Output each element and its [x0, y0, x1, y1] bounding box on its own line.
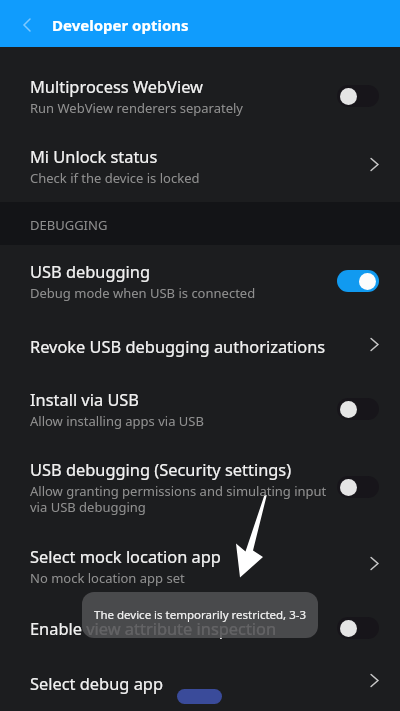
staticText: Run WebView renderers separately — [30, 99, 243, 117]
button[interactable]: Toggle — [337, 617, 379, 639]
button[interactable]: Enable view attribute inspection — [0, 600, 400, 656]
button[interactable]: Toggle — [337, 398, 379, 420]
button[interactable]: USB debugging — [0, 245, 400, 316]
button[interactable]: Install via USB — [0, 376, 400, 442]
button[interactable]: Mi Unlock status — [0, 130, 400, 202]
button[interactable]: Back — [0, 2, 52, 47]
staticText: Revoke USB debugging authorizations — [30, 335, 326, 357]
staticText: Check if the device is locked — [30, 169, 200, 187]
staticText: Developer options — [52, 15, 189, 35]
staticText: Debug mode when USB is connected — [30, 284, 256, 302]
button[interactable]: USB debugging (Security settings) — [0, 442, 400, 531]
staticText: No mock location app set — [30, 569, 185, 587]
staticText: USB debugging (Security settings) — [30, 458, 292, 480]
staticText: The device is temporarily restricted, 3-… — [94, 607, 307, 623]
staticText: DEBUGGING — [30, 216, 108, 234]
staticText: Install via USB — [30, 388, 140, 410]
staticText: Select mock location app — [30, 545, 221, 567]
button[interactable]: Toggle — [337, 476, 379, 498]
button[interactable]: Toggle — [337, 85, 379, 107]
staticText: Mi Unlock status — [30, 145, 158, 167]
button[interactable]: Select debug app — [0, 656, 400, 709]
staticText: Multiprocess WebView — [30, 75, 203, 97]
button[interactable]: Revoke USB debugging authorizations — [0, 316, 400, 376]
button[interactable]: Toggle — [337, 270, 379, 292]
staticText: Enable view attribute inspection — [30, 617, 277, 639]
staticText: USB debugging — [30, 260, 151, 282]
staticText: Allow granting permissions and simulatin… — [30, 482, 327, 515]
staticText: Select debug app — [30, 672, 163, 694]
staticText: Allow installing apps via USB — [30, 412, 204, 430]
button[interactable]: Multiprocess WebView — [0, 62, 400, 130]
button[interactable]: Select mock location app — [0, 531, 400, 600]
